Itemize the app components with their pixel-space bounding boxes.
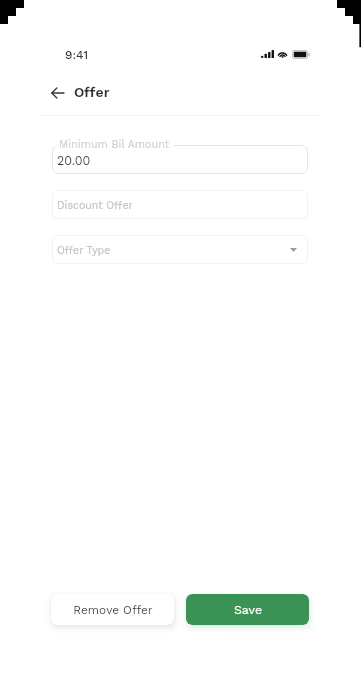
button[interactable]: Back [49, 84, 66, 102]
button[interactable]: Discount Offer [52, 190, 308, 219]
button[interactable]: Save [186, 594, 309, 625]
staticText: Offer [74, 84, 110, 100]
staticText: 9:41 [65, 48, 89, 62]
staticText: 20.00 [57, 153, 91, 168]
staticText: Discount Offer [57, 199, 133, 211]
staticText: Save [234, 603, 262, 617]
button[interactable]: 20.00 [52, 145, 308, 174]
button[interactable]: Remove Offer [51, 594, 174, 625]
button[interactable]: Offer Type [52, 235, 308, 264]
staticText: Minimum Bil Amount [59, 138, 170, 151]
staticText: Remove Offer [73, 603, 153, 617]
staticText: Offer Type [57, 244, 111, 256]
